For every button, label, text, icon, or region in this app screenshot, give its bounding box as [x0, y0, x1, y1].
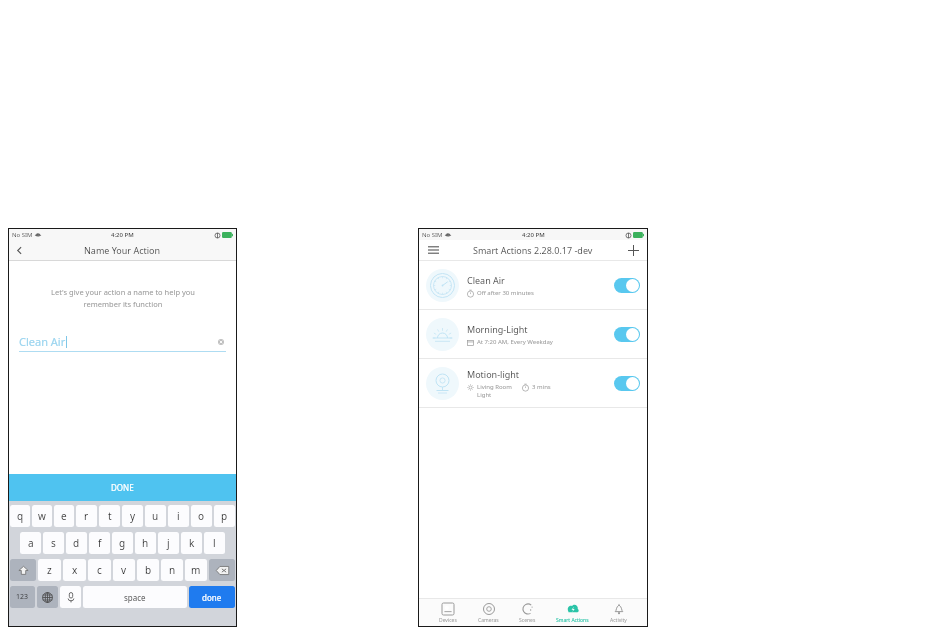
staticText: Living Room Light	[477, 383, 512, 399]
button[interactable]: p	[214, 505, 235, 527]
staticText: Morning-Light	[467, 323, 528, 335]
staticText: v	[121, 563, 127, 577]
button[interactable]: Smart Actions	[556, 600, 589, 626]
button[interactable]: d	[66, 532, 87, 554]
staticText: f	[98, 536, 102, 550]
staticText: Clean Air	[19, 334, 66, 349]
button[interactable]: Morning-Light	[419, 310, 647, 358]
staticText: Motion-light	[467, 368, 520, 380]
button[interactable]: Toggle Motion-light	[614, 376, 640, 391]
staticText: 4:20 PM	[111, 231, 134, 239]
staticText: w	[38, 509, 46, 523]
staticText: DONE	[111, 482, 134, 493]
button[interactable]: o	[191, 505, 212, 527]
button[interactable]: Devices	[439, 600, 457, 626]
staticText: p	[221, 509, 228, 523]
button[interactable]: Backspace	[209, 559, 235, 581]
button[interactable]: Clear text	[216, 337, 226, 347]
button[interactable]: done	[189, 586, 235, 608]
button[interactable]: space	[83, 586, 187, 608]
staticText: Smart Actions	[556, 617, 589, 624]
button[interactable]: g	[112, 532, 133, 554]
staticText: No SIM	[422, 231, 443, 239]
staticText: Scenes	[519, 617, 536, 624]
staticText: a	[28, 536, 34, 550]
button[interactable]: Scenes	[519, 600, 536, 626]
staticText: n	[169, 563, 176, 577]
button[interactable]: s	[43, 532, 64, 554]
staticText: j	[167, 536, 170, 550]
button[interactable]: f	[89, 532, 110, 554]
staticText: r	[84, 509, 89, 523]
staticText: Name Your Action	[84, 244, 161, 256]
staticText: t	[108, 509, 112, 523]
staticText: Let's give your action a name to help yo…	[51, 287, 195, 310]
staticText: 4:20 PM	[522, 231, 545, 239]
button[interactable]: w	[32, 505, 52, 527]
button[interactable]: Change keyboard language	[37, 586, 58, 608]
button[interactable]: i	[168, 505, 189, 527]
button[interactable]: 123	[10, 586, 35, 608]
button[interactable]: a	[20, 532, 41, 554]
button[interactable]: Toggle Clean Air	[614, 278, 640, 293]
staticText: i	[177, 509, 180, 523]
staticText: Smart Actions 2.28.0.17 -dev	[473, 244, 593, 256]
staticText: s	[51, 536, 56, 550]
staticText: k	[189, 536, 195, 550]
button[interactable]: y	[122, 505, 143, 527]
staticText: b	[145, 563, 152, 577]
button[interactable]: j	[158, 532, 179, 554]
button[interactable]: Cameras	[478, 600, 499, 626]
button[interactable]: h	[135, 532, 156, 554]
button[interactable]: Back	[9, 240, 29, 260]
staticText: Activity	[610, 617, 627, 624]
button[interactable]: Menu	[425, 242, 441, 258]
staticText: q	[17, 509, 24, 523]
button[interactable]: Voice input	[60, 586, 81, 608]
button[interactable]: c	[88, 559, 111, 581]
staticText: space	[124, 592, 146, 603]
button[interactable]: r	[76, 505, 97, 527]
button[interactable]: l	[204, 532, 225, 554]
staticText: x	[72, 563, 78, 577]
button[interactable]: e	[54, 505, 74, 527]
staticText: Cameras	[478, 617, 499, 624]
staticText: 3 mins	[532, 383, 551, 391]
staticText: e	[61, 509, 67, 523]
staticText: z	[47, 563, 52, 577]
button[interactable]: b	[137, 559, 159, 581]
staticText: u	[152, 509, 159, 523]
button[interactable]: z	[38, 559, 61, 581]
button[interactable]: x	[63, 559, 86, 581]
button[interactable]: Motion-light	[419, 359, 647, 407]
button[interactable]: t	[99, 505, 120, 527]
button[interactable]: Activity	[610, 600, 627, 626]
staticText: Off after 30 minutes	[477, 289, 534, 297]
button[interactable]: u	[145, 505, 166, 527]
staticText: c	[97, 563, 102, 577]
staticText: d	[73, 536, 80, 550]
button[interactable]: Toggle Morning-Light	[614, 327, 640, 342]
button[interactable]: m	[185, 559, 207, 581]
staticText: l	[213, 536, 216, 550]
staticText: y	[130, 509, 136, 523]
staticText: No SIM	[12, 231, 33, 239]
button[interactable]: k	[181, 532, 202, 554]
button[interactable]: DONE	[9, 474, 236, 501]
staticText: Clean Air	[467, 274, 505, 286]
staticText: o	[198, 509, 205, 523]
button[interactable]: v	[113, 559, 135, 581]
button[interactable]: n	[161, 559, 183, 581]
button[interactable]: Shift	[10, 559, 36, 581]
button[interactable]: Add action	[625, 242, 641, 258]
staticText: g	[119, 536, 126, 550]
staticText: 123	[16, 592, 29, 602]
button[interactable]: Clean Air	[419, 261, 647, 309]
staticText: m	[191, 563, 201, 577]
button[interactable]: q	[10, 505, 30, 527]
staticText: done	[202, 592, 222, 603]
staticText: At 7:20 AM, Every Weekday	[477, 338, 553, 346]
staticText: Devices	[439, 617, 457, 624]
staticText: h	[142, 536, 149, 550]
